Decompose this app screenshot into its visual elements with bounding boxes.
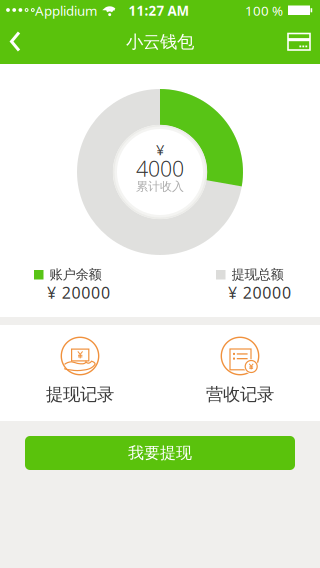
- staticText: 11:27 AM: [128, 2, 189, 19]
- staticText: 4000: [136, 154, 184, 183]
- staticText: ¥: [156, 140, 164, 159]
- button[interactable]: 我要提现: [25, 436, 295, 470]
- staticText: 提现记录: [46, 384, 114, 405]
- button[interactable]: 营收记录: [160, 325, 320, 421]
- button[interactable]: [0, 20, 36, 64]
- staticText: 100 %: [245, 2, 283, 19]
- staticText: 账户余额: [49, 266, 101, 283]
- staticText: 累计收入: [136, 179, 184, 194]
- staticText: 提现总额: [231, 266, 283, 283]
- staticText: ¥ 20000: [228, 282, 291, 303]
- staticText: 我要提现: [128, 443, 192, 463]
- button[interactable]: 提现记录: [0, 325, 160, 421]
- staticText: 小云钱包: [126, 31, 194, 53]
- staticText: ¥ 20000: [47, 282, 110, 303]
- button[interactable]: [281, 21, 317, 61]
- staticText: 营收记录: [206, 384, 274, 405]
- staticText: Applidium: [35, 2, 97, 19]
